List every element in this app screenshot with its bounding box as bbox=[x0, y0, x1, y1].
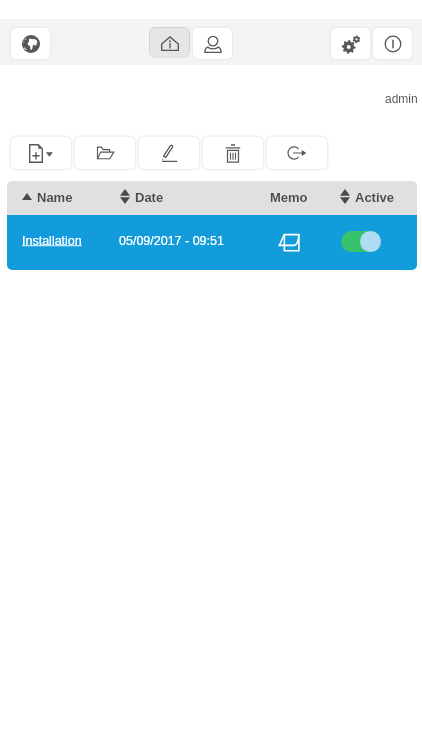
staticText: admin bbox=[385, 92, 418, 105]
button[interactable]: Power off bbox=[373, 28, 412, 59]
staticText: Installation bbox=[22, 234, 82, 248]
button[interactable]: Delete bbox=[203, 137, 263, 169]
button[interactable]: User profile bbox=[193, 28, 232, 59]
button[interactable]: admin bbox=[0, 92, 418, 105]
button[interactable]: Language bbox=[11, 28, 50, 59]
staticText: Name bbox=[37, 190, 73, 205]
staticText: Active bbox=[355, 190, 395, 205]
staticText: Date bbox=[135, 190, 164, 205]
button[interactable]: Home bbox=[150, 28, 189, 58]
button[interactable]: Export bbox=[267, 137, 327, 169]
button[interactable]: Edit bbox=[139, 137, 199, 169]
button[interactable]: Open folder bbox=[75, 137, 135, 169]
button[interactable]: Memo bbox=[278, 232, 300, 252]
button[interactable]: Active toggle bbox=[341, 231, 381, 252]
staticText: Memo bbox=[270, 190, 308, 205]
button[interactable]: Settings bbox=[331, 28, 370, 59]
button[interactable]: Installation bbox=[22, 234, 82, 248]
staticText: 05/09/2017 - 09:51 bbox=[119, 234, 224, 248]
button[interactable]: New document bbox=[11, 137, 71, 169]
